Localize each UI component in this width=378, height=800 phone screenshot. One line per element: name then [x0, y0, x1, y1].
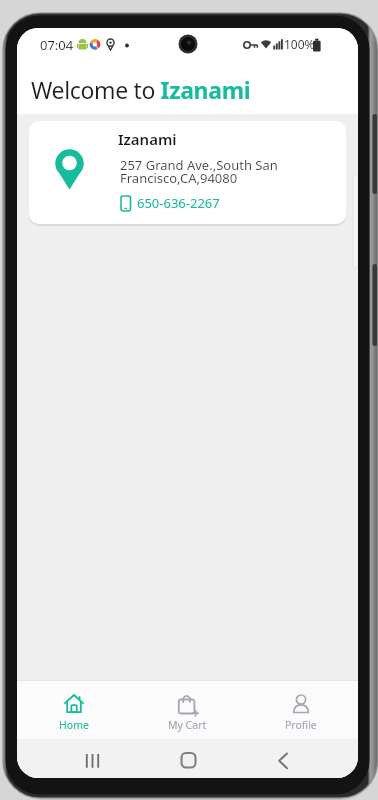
staticText: Home	[59, 718, 89, 732]
button[interactable]: Izanami	[29, 121, 346, 224]
staticText: Welcome to Izanami	[31, 74, 251, 105]
button[interactable]: 650-636-2267	[120, 194, 220, 212]
staticText: 257 Grand Ave.,South San	[120, 156, 278, 174]
button[interactable]	[244, 739, 358, 778]
staticText: 650-636-2267	[137, 194, 220, 212]
staticText: 100%	[284, 36, 315, 52]
button[interactable]	[130, 739, 244, 778]
staticText: 07:04	[40, 36, 74, 54]
staticText: My Cart	[168, 718, 207, 732]
staticText: Profile	[285, 718, 317, 732]
staticText: Francisco,CA,94080	[120, 169, 238, 187]
staticText: Izanami	[118, 129, 177, 149]
button[interactable]: My Cart	[130, 680, 244, 739]
button[interactable]: Profile	[244, 680, 358, 739]
button[interactable]: Home	[17, 680, 130, 739]
button[interactable]	[17, 739, 130, 778]
